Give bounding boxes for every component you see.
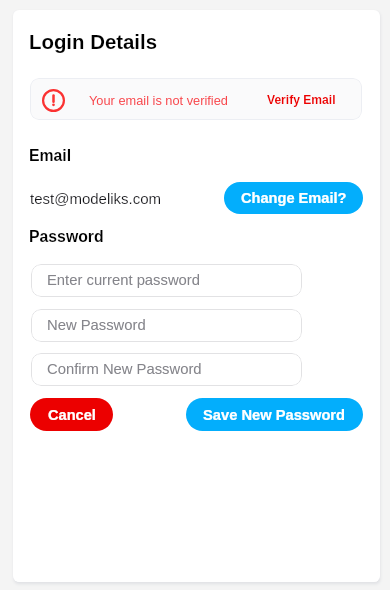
staticText: Your email is not verified bbox=[89, 93, 228, 107]
staticText: test@modeliks.com bbox=[30, 190, 162, 207]
staticText: Login Details bbox=[29, 31, 158, 54]
button[interactable]: Confirm New Password bbox=[31, 353, 302, 386]
staticText: Cancel bbox=[48, 407, 96, 423]
staticText: New Password bbox=[47, 317, 146, 334]
staticText: Confirm New Password bbox=[47, 361, 202, 378]
button[interactable]: Enter current password bbox=[31, 264, 302, 297]
button[interactable]: Save New Password bbox=[186, 398, 363, 431]
button[interactable]: New Password bbox=[31, 309, 302, 342]
staticText: Change Email? bbox=[241, 190, 347, 206]
other: Warning bbox=[42, 89, 65, 112]
staticText: Save New Password bbox=[203, 407, 346, 423]
staticText: Verify Email bbox=[267, 93, 336, 107]
button[interactable]: Cancel bbox=[30, 398, 113, 431]
staticText: Password bbox=[29, 228, 104, 246]
button[interactable]: Verify Email bbox=[263, 86, 340, 114]
staticText: Email bbox=[29, 147, 72, 165]
button[interactable]: Change Email? bbox=[224, 182, 363, 214]
staticText: Enter current password bbox=[47, 272, 200, 289]
